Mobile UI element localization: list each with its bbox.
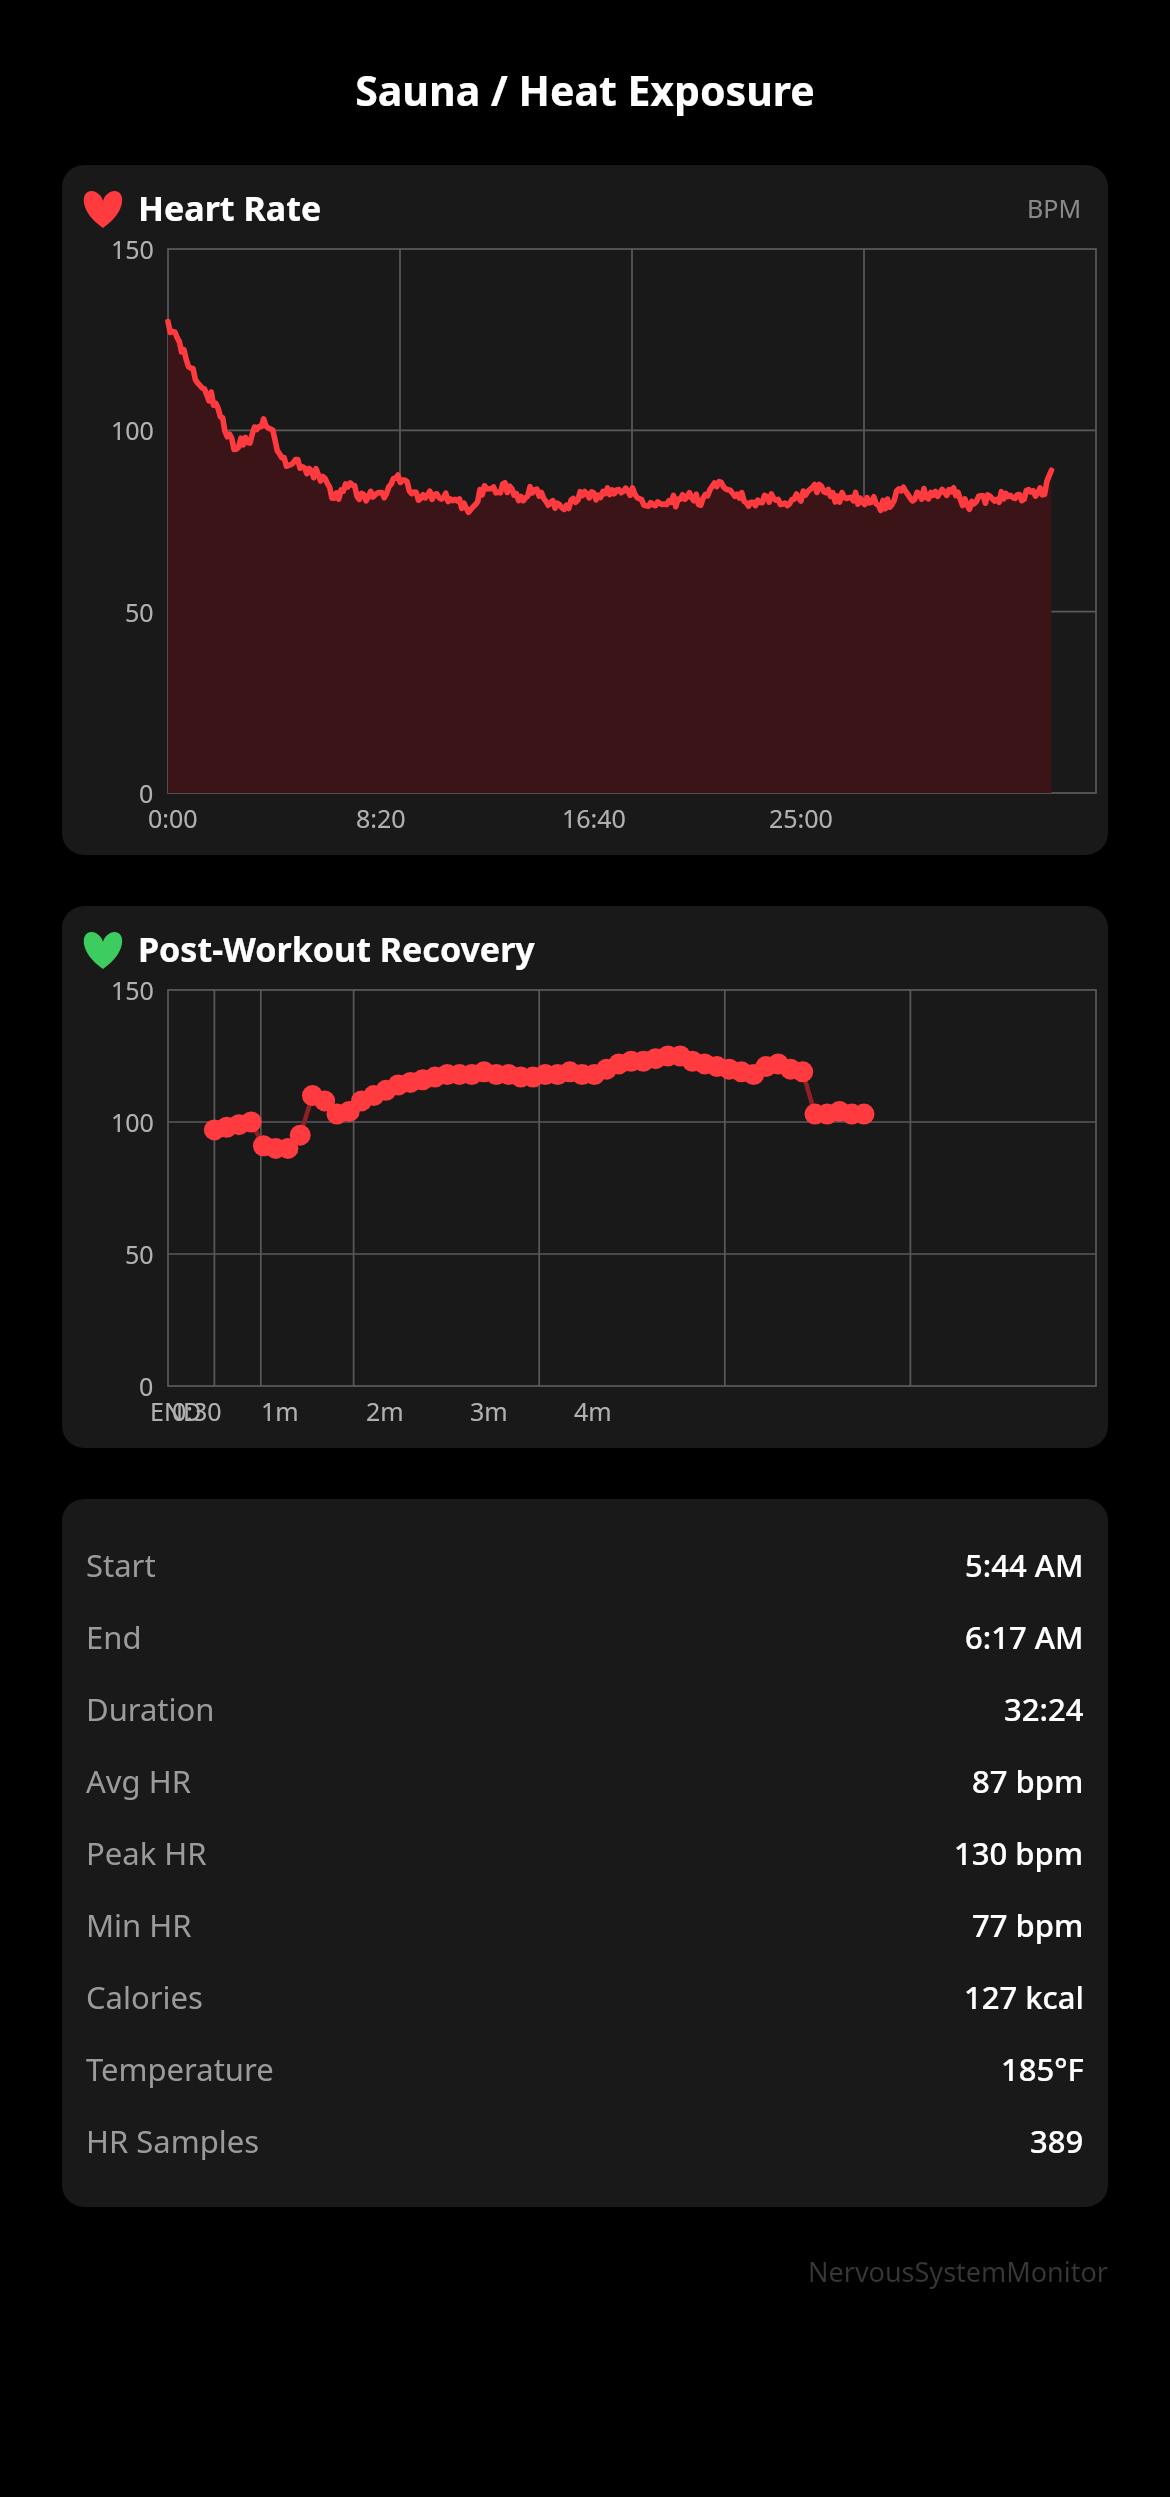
button[interactable]: HR Samples [86,2105,1084,2177]
staticText: Avg HR [86,1760,191,1802]
staticText: Calories [86,1976,203,2018]
other: Heart rate [82,187,124,229]
button[interactable]: Recovery [62,906,1108,1448]
staticText: End [86,1616,142,1658]
staticText: 16:40 [562,801,626,835]
button[interactable]: Duration [86,1673,1084,1745]
staticText: Sauna / Heat Exposure [62,62,1108,118]
button[interactable]: Temperature [86,2033,1084,2105]
staticText: 127 kcal [964,1976,1084,2018]
button[interactable]: Start [86,1529,1084,1601]
staticText: 150 [111,232,154,266]
staticText: Duration [86,1688,215,1730]
staticText: 130 bpm [954,1832,1084,1874]
staticText: 3m [470,1394,508,1428]
staticText: 50 [125,595,154,629]
staticText: 150 [111,973,154,1007]
staticText: 1m [261,1394,299,1428]
staticText: 100 [111,413,154,447]
staticText: 50 [125,1237,154,1271]
staticText: 2m [366,1394,404,1428]
button[interactable]: Min HR [86,1889,1084,1961]
staticText: NervousSystemMonitor [62,2253,1108,2290]
other: Recovery [82,928,124,970]
staticText: HR Samples [86,2120,260,2162]
staticText: Peak HR [86,1832,207,1874]
staticText: 77 bpm [972,1904,1084,1946]
button[interactable]: Peak HR [86,1817,1084,1889]
staticText: Min HR [86,1904,192,1946]
button[interactable]: Avg HR [86,1745,1084,1817]
staticText: 4m [574,1394,612,1428]
staticText: 87 bpm [972,1760,1084,1802]
staticText: 5:44 AM [965,1544,1084,1586]
button[interactable]: End [86,1601,1084,1673]
staticText: 6:17 AM [965,1616,1084,1658]
staticText: 0 [139,776,154,810]
staticText: 32:24 [1004,1688,1084,1730]
staticText: 389 [1030,2120,1084,2162]
staticText: 0:30 [172,1394,222,1428]
staticText: 0 [139,1369,154,1403]
button[interactable]: Calories [86,1961,1084,2033]
staticText: Heart Rate [138,185,322,231]
staticText: 8:20 [356,801,406,835]
staticText: 0:00 [148,801,198,835]
staticText: 25:00 [769,801,833,835]
staticText: 100 [111,1105,154,1139]
staticText: 185°F [1001,2048,1084,2090]
staticText: BPM [1027,191,1082,225]
button[interactable]: Heart rate [62,165,1108,855]
staticText: Start [86,1544,156,1586]
staticText: END [150,1394,202,1428]
staticText: Temperature [86,2048,274,2090]
staticText: Post-Workout Recovery [138,926,535,972]
